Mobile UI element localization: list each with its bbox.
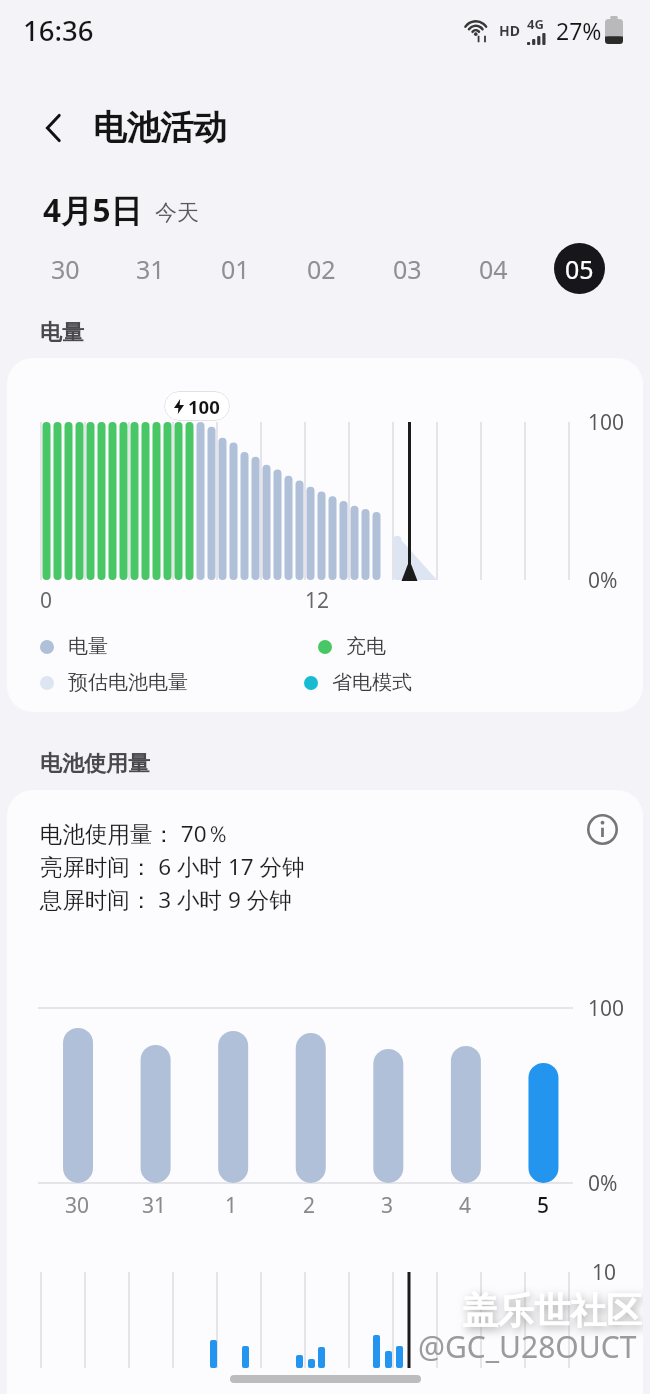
staticText: 预估电池电量	[68, 670, 188, 695]
staticText: 充电	[346, 634, 386, 659]
staticText: 04	[479, 252, 508, 286]
staticText: 16:36	[23, 12, 94, 49]
staticText: 0	[40, 586, 53, 615]
button[interactable]: 30	[23, 243, 108, 294]
staticText: 4月5日	[43, 188, 143, 231]
staticText: 100	[188, 394, 220, 419]
staticText: 电池使用量	[40, 750, 150, 778]
staticText: HD	[499, 21, 520, 40]
staticText: 电池使用量： 70％	[40, 818, 230, 849]
button[interactable]: 31	[108, 243, 193, 294]
staticText: 12	[305, 586, 330, 615]
staticText: 31	[136, 252, 165, 286]
staticText: 31	[142, 1191, 167, 1220]
staticText: 30	[51, 252, 80, 286]
button[interactable]	[581, 808, 624, 851]
staticText: 0%	[588, 566, 618, 595]
staticText: 息屏时间： 3 小时 9 分钟	[40, 884, 292, 915]
staticText: 电量	[68, 634, 108, 659]
staticText: 02	[307, 252, 336, 286]
button[interactable]: 05	[554, 243, 605, 294]
staticText: 100	[588, 408, 625, 437]
staticText: @GC_U28OUCT	[418, 1326, 637, 1367]
button[interactable]	[35, 110, 71, 146]
staticText: 省电模式	[332, 670, 412, 695]
staticText: 05	[565, 252, 594, 286]
button[interactable]: 03	[364, 243, 450, 294]
staticText: 100	[588, 994, 625, 1023]
staticText: 电量	[40, 319, 84, 347]
staticText: 1	[225, 1191, 238, 1220]
staticText: 2	[303, 1191, 316, 1220]
staticText: 0%	[588, 1169, 618, 1198]
staticText: 30	[65, 1191, 90, 1220]
staticText: 今天	[155, 199, 199, 227]
staticText: 电池活动	[93, 107, 227, 149]
staticText: 盖乐世社区	[462, 1288, 642, 1333]
staticText: 5	[537, 1191, 550, 1220]
button[interactable]: 02	[278, 243, 364, 294]
staticText: 4	[459, 1191, 472, 1220]
staticText: 亮屏时间： 6 小时 17 分钟	[40, 851, 305, 882]
button[interactable]: 04	[450, 243, 536, 294]
staticText: 10	[592, 1258, 617, 1287]
staticText: 01	[221, 252, 250, 286]
staticText: 03	[393, 252, 422, 286]
staticText: 3	[381, 1191, 394, 1220]
staticText: 4G	[527, 15, 544, 33]
staticText: 27%	[556, 15, 602, 46]
button[interactable]: 01	[193, 243, 278, 294]
